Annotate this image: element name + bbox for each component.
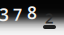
- staticText: 2: [45, 8, 53, 27]
- staticText: 7: [13, 4, 22, 25]
- staticText: 8: [27, 1, 37, 24]
- staticText: 3: [0, 3, 9, 26]
